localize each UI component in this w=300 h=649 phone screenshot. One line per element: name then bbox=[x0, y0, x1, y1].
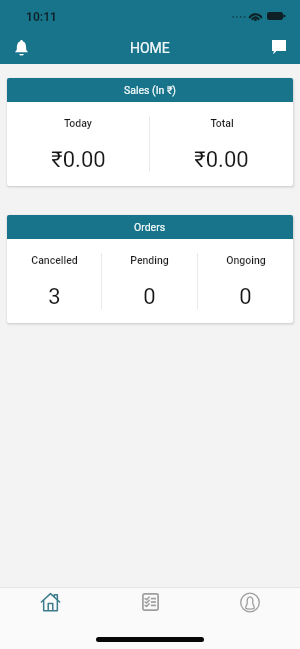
staticText: HOME bbox=[130, 40, 170, 56]
button[interactable]: Chat bbox=[258, 30, 300, 64]
button[interactable]: Notifications bbox=[0, 30, 42, 64]
button[interactable]: Orders bbox=[100, 588, 200, 624]
staticText: Ongoing bbox=[226, 254, 266, 266]
staticText: ₹0.00 bbox=[51, 147, 106, 173]
button[interactable]: Home bbox=[0, 588, 100, 624]
staticText: 10:11 bbox=[26, 10, 57, 24]
staticText: 0 bbox=[143, 284, 156, 310]
staticText: 3 bbox=[48, 284, 61, 310]
staticText: 0 bbox=[239, 284, 252, 310]
staticText: Orders bbox=[134, 221, 166, 233]
staticText: ₹0.00 bbox=[194, 147, 249, 173]
staticText: Pending bbox=[130, 254, 169, 266]
staticText: Cancelled bbox=[31, 254, 78, 266]
staticText: Total bbox=[210, 117, 234, 129]
button[interactable]: Profile bbox=[200, 588, 300, 624]
staticText: Sales (In ₹) bbox=[124, 84, 177, 96]
staticText: Today bbox=[64, 117, 92, 129]
